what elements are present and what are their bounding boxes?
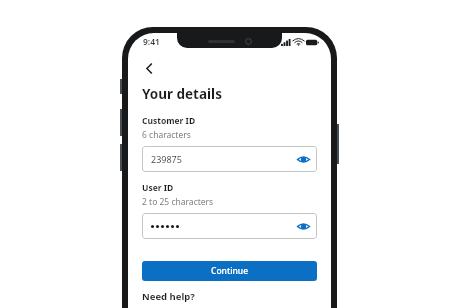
staticText: User ID — [142, 182, 174, 194]
button[interactable]: Continue — [142, 261, 317, 281]
staticText: 2 to 25 characters — [142, 196, 214, 208]
button[interactable]: Show value — [142, 213, 317, 239]
button[interactable]: 239875 — [142, 146, 317, 172]
staticText: 6 characters — [142, 129, 191, 141]
staticText: 239875 — [151, 153, 182, 165]
button[interactable]: Show value — [295, 151, 311, 167]
staticText: Continue — [211, 265, 249, 277]
staticText: 9:41 — [143, 36, 160, 48]
staticText: Your details — [142, 85, 222, 103]
button[interactable]: Back — [136, 55, 162, 81]
staticText: Customer ID — [142, 115, 196, 127]
button[interactable]: Need help? — [142, 290, 195, 303]
staticText: Need help? — [142, 290, 195, 303]
button[interactable]: Show value — [295, 218, 311, 234]
